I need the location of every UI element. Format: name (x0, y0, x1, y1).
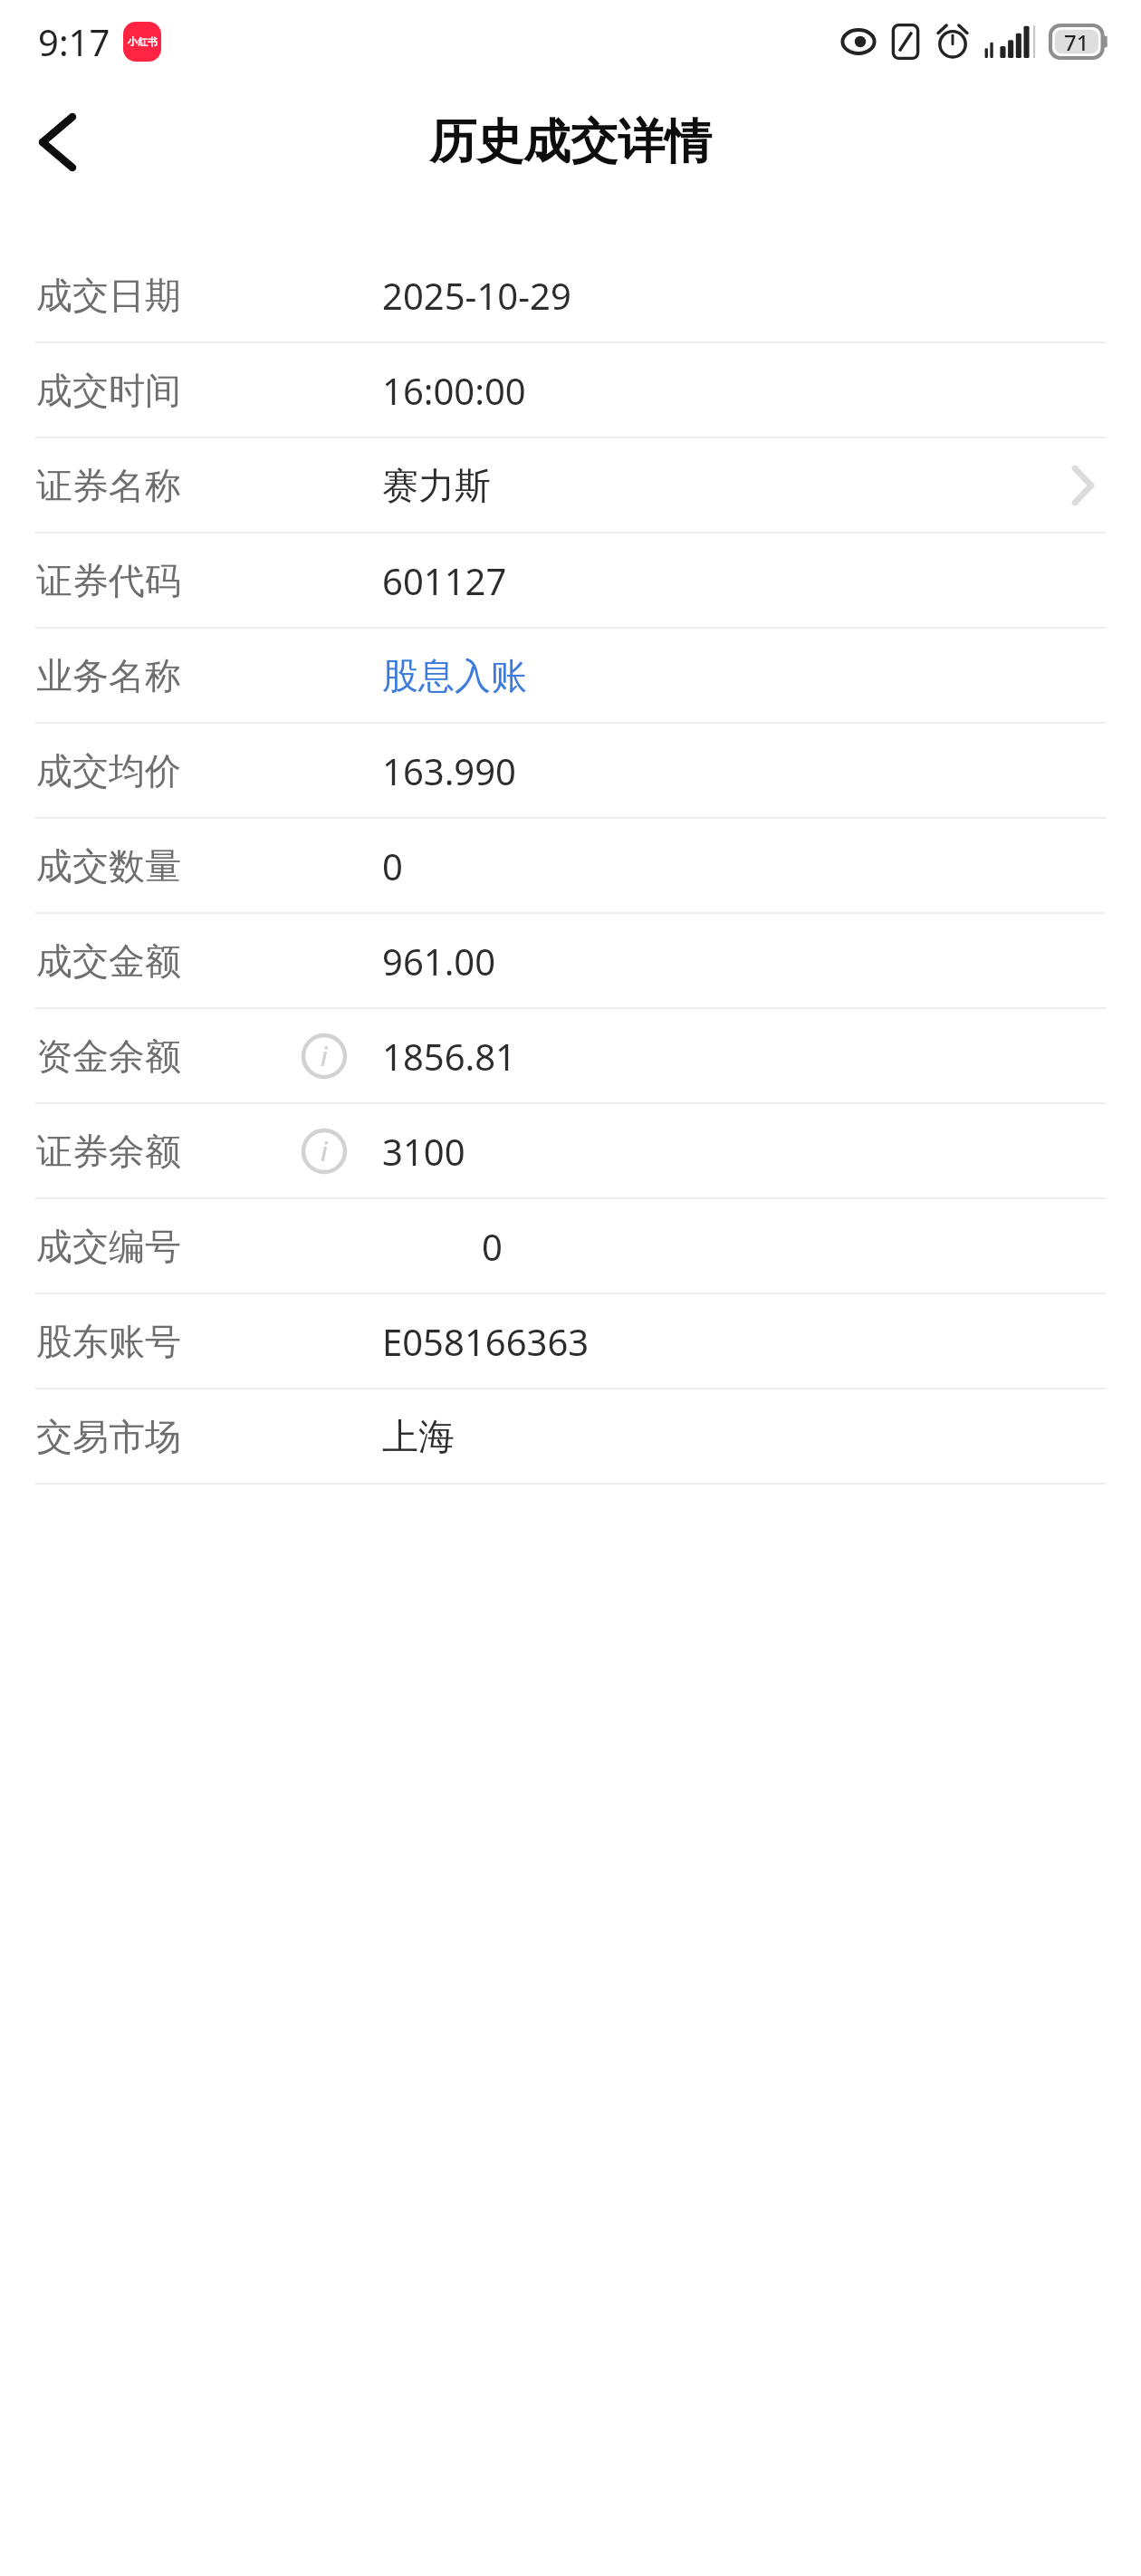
staticText: 股息入账 (382, 653, 527, 698)
staticText: 1856.81 (382, 1032, 516, 1081)
staticText: 成交金额 (36, 938, 181, 984)
button[interactable]: 成交数量 (0, 819, 1141, 912)
button[interactable]: Info (302, 1129, 347, 1174)
staticText: 9:17 (38, 17, 110, 66)
button[interactable]: 资金余额 (0, 1009, 1141, 1102)
staticText: 成交均价 (36, 748, 181, 793)
staticText: 成交数量 (36, 843, 181, 889)
staticText: 601127 (382, 556, 507, 605)
staticText: 2025-10-29 (382, 271, 571, 320)
staticText: 交易市场 (36, 1414, 181, 1459)
staticText: 证券余额 (36, 1129, 181, 1174)
button[interactable]: Back (0, 86, 112, 198)
staticText: 成交编号 (36, 1224, 181, 1269)
staticText: E058166363 (382, 1317, 590, 1366)
staticText: 小红书 (128, 35, 158, 48)
button[interactable]: 证券名称 (0, 438, 1141, 532)
staticText: 成交日期 (36, 273, 181, 318)
staticText: 证券名称 (36, 463, 181, 508)
button[interactable]: 交易市场 (0, 1389, 1141, 1483)
button[interactable]: Open security detail (1058, 460, 1108, 511)
button[interactable]: 成交日期 (0, 248, 1141, 341)
staticText: 成交时间 (36, 368, 181, 413)
staticText: 71 (1064, 27, 1089, 57)
button[interactable]: 成交时间 (0, 343, 1141, 437)
button[interactable]: 证券代码 (0, 533, 1141, 627)
staticText: 163.990 (382, 746, 516, 795)
staticText: 0 (382, 841, 403, 890)
staticText: 历史成交详情 (429, 112, 712, 172)
staticText: 业务名称 (36, 653, 181, 698)
staticText: 资金余额 (36, 1033, 181, 1079)
button[interactable]: 成交编号 (0, 1199, 1141, 1293)
button[interactable]: Info (302, 1033, 347, 1079)
staticText: 证券代码 (36, 558, 181, 603)
button[interactable]: 成交金额 (0, 914, 1141, 1007)
staticText: 赛力斯 (382, 463, 491, 508)
staticText: 股东账号 (36, 1319, 181, 1364)
button[interactable]: 股东账号 (0, 1294, 1141, 1388)
button[interactable]: 证券余额 (0, 1104, 1141, 1197)
staticText: 上海 (382, 1414, 455, 1459)
staticText: 16:00:00 (382, 366, 526, 415)
staticText: i (321, 1134, 328, 1168)
button[interactable]: 业务名称 (0, 629, 1141, 722)
staticText: i (321, 1039, 328, 1073)
staticText: 961.00 (382, 937, 496, 985)
staticText: 0 (482, 1222, 503, 1271)
staticText: 3100 (382, 1127, 465, 1176)
button[interactable]: 成交均价 (0, 724, 1141, 817)
